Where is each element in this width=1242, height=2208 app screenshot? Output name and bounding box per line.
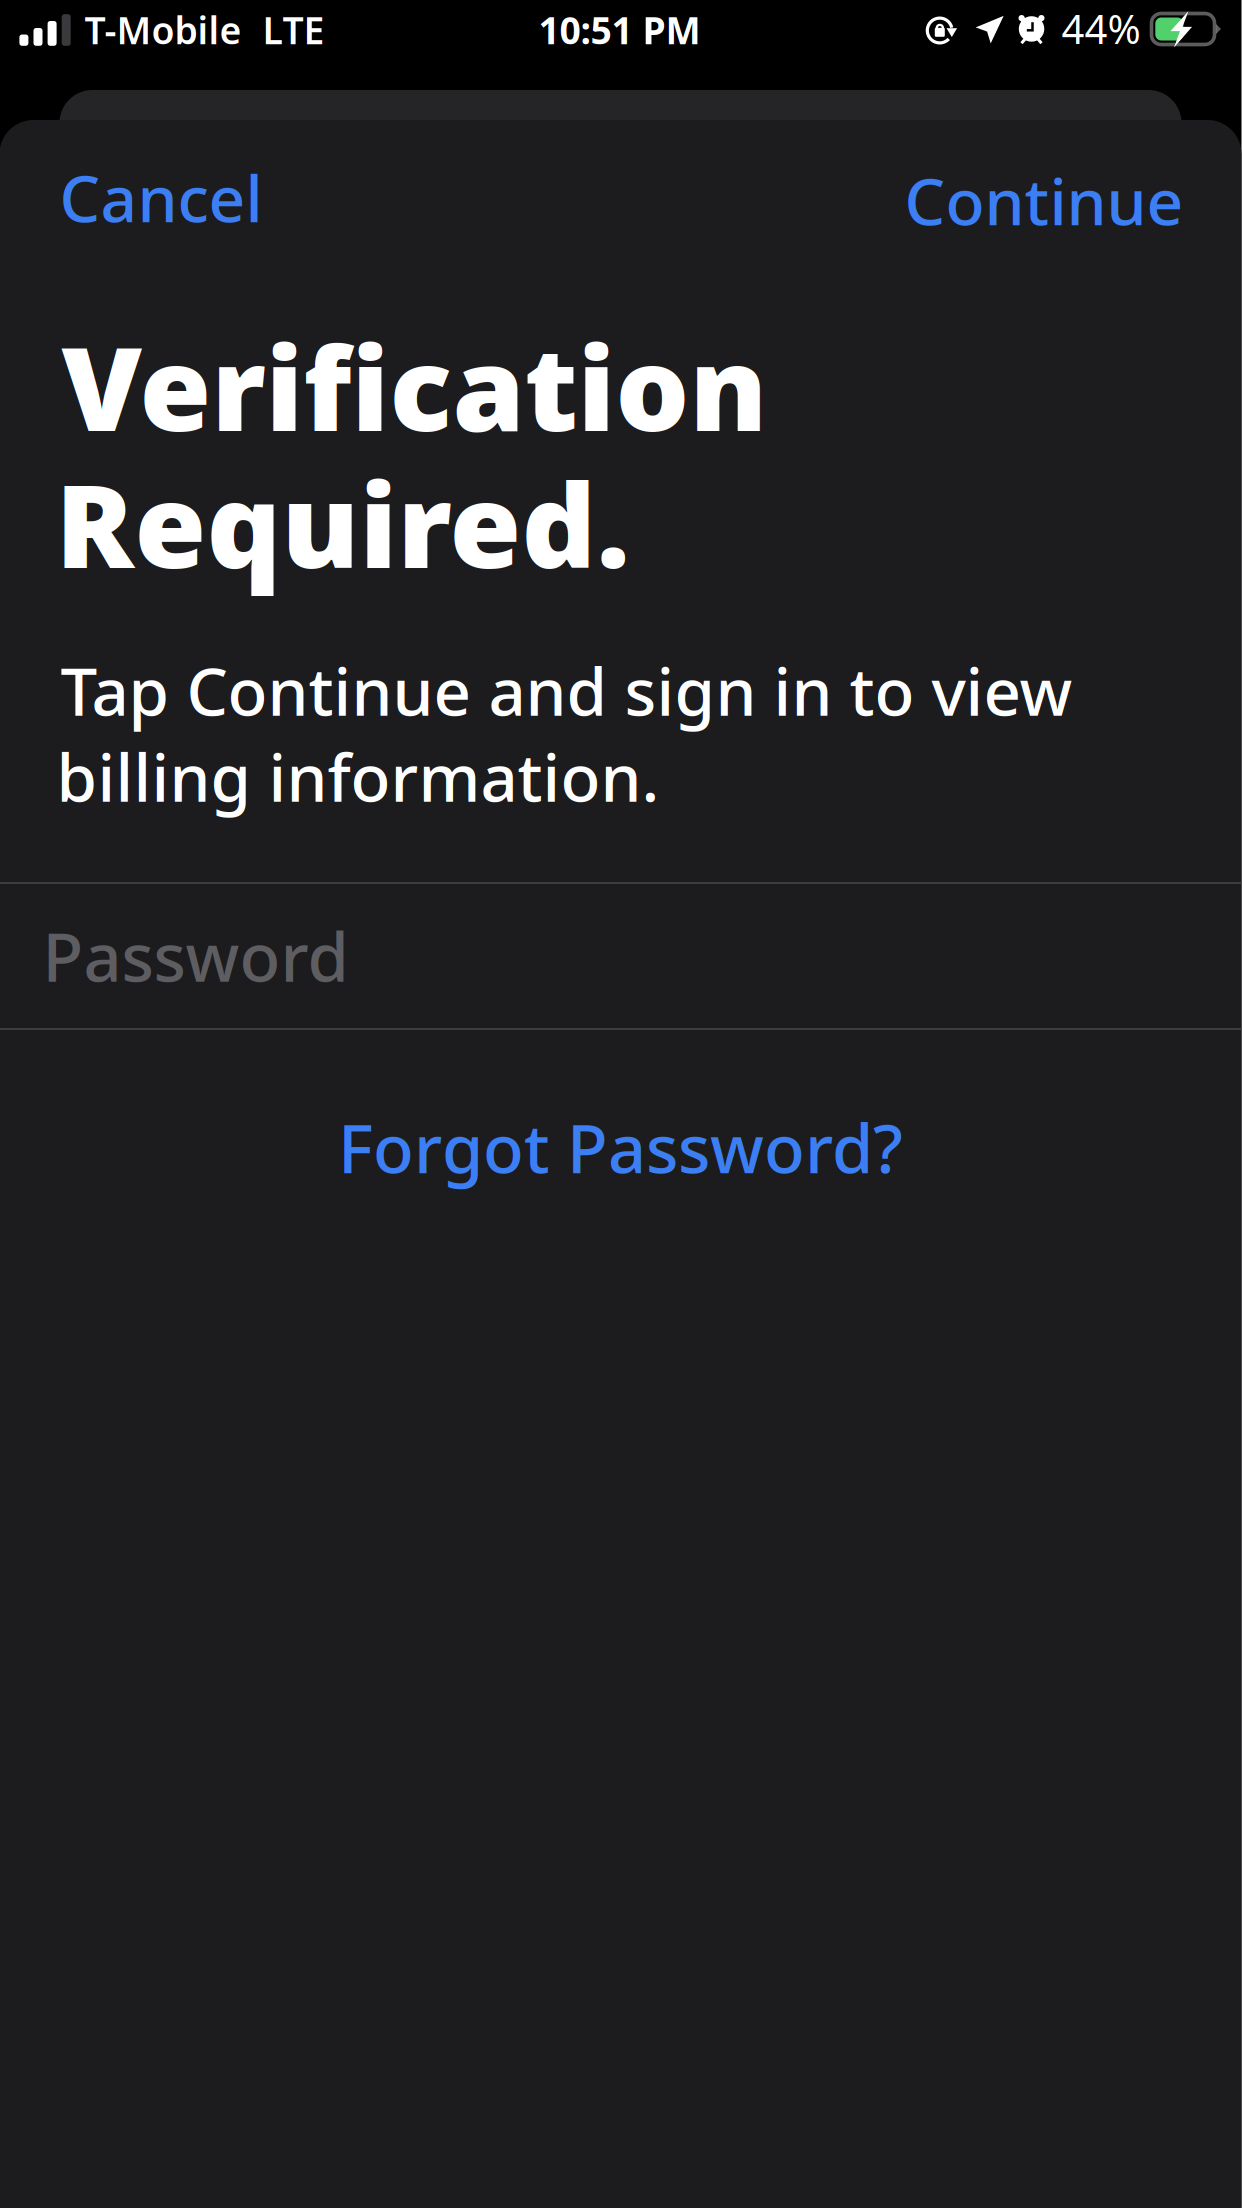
staticText: Verification: [61, 309, 767, 463]
staticText: Tap Continue and sign in to view: [60, 647, 1072, 734]
button[interactable]: Continue: [888, 136, 1199, 265]
staticText: Required.: [55, 446, 630, 600]
staticText: Continue: [904, 158, 1183, 243]
staticText: 44%: [1061, 2, 1140, 55]
button[interactable]: Forgot Password?: [310, 1077, 930, 1217]
staticText: Forgot Password?: [338, 1103, 903, 1191]
staticText: billing information.: [56, 733, 659, 820]
staticText: T-Mobile: [84, 5, 241, 55]
button[interactable]: Cancel: [43, 133, 278, 262]
staticText: Cancel: [59, 155, 262, 240]
staticText: Password: [42, 912, 348, 1000]
staticText: 10:51 PM: [538, 5, 700, 55]
button[interactable]: Password: [0, 884, 1242, 1028]
staticText: LTE: [262, 5, 324, 55]
